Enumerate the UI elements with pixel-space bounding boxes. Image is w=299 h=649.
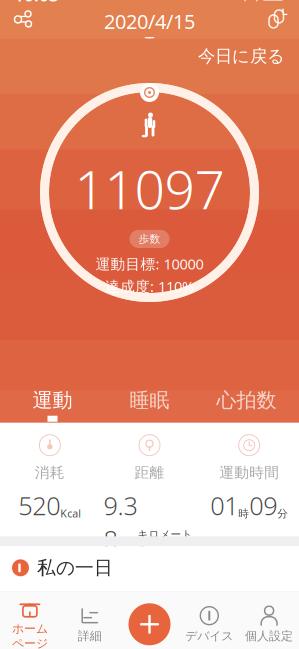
- staticText: Kcal: [60, 506, 81, 520]
- button[interactable]: Share: [12, 8, 34, 30]
- staticText: 10:03: [14, 0, 59, 6]
- staticText: 詳細: [78, 629, 102, 643]
- button[interactable]: 私の一日: [0, 546, 299, 589]
- staticText: 運動目標: 10000: [95, 254, 203, 273]
- button[interactable]: 詳細: [60, 600, 120, 647]
- button[interactable]: 今日に戻る: [198, 46, 285, 67]
- staticText: ホームページ: [12, 621, 48, 649]
- staticText: 520: [18, 489, 60, 522]
- staticText: 距離: [134, 464, 164, 482]
- staticText: デバイス: [185, 629, 233, 643]
- staticText: 運動: [32, 388, 72, 413]
- button[interactable]: 運動: [4, 388, 101, 422]
- button[interactable]: 2020/4/15: [104, 8, 195, 41]
- button[interactable]: Unlink device: [265, 8, 287, 30]
- staticText: 消耗: [35, 464, 65, 482]
- staticText: 09: [249, 489, 277, 522]
- staticText: 9.38: [103, 489, 137, 556]
- button[interactable]: 心拍数: [198, 388, 295, 422]
- staticText: 心拍数: [216, 388, 276, 413]
- staticText: 分: [277, 507, 288, 520]
- button[interactable]: Add: [126, 601, 172, 647]
- button[interactable]: デバイス: [179, 600, 239, 647]
- staticText: 11097: [74, 153, 224, 224]
- staticText: キロメートル: [137, 528, 192, 554]
- staticText: 今日に戻る: [198, 46, 285, 67]
- staticText: 時: [238, 507, 249, 520]
- button[interactable]: 個人設定: [239, 600, 299, 647]
- staticText: 達成度: 110%: [105, 276, 194, 296]
- staticText: 私の一日: [37, 556, 113, 579]
- button[interactable]: ホームページ: [0, 592, 60, 649]
- staticText: 01: [210, 489, 238, 522]
- staticText: 歩数: [138, 232, 160, 245]
- staticText: 2020/4/15: [104, 8, 195, 34]
- button[interactable]: 睡眠: [101, 388, 198, 422]
- staticText: 睡眠: [129, 388, 169, 413]
- staticText: 運動時間: [219, 464, 279, 482]
- staticText: 個人設定: [245, 629, 293, 643]
